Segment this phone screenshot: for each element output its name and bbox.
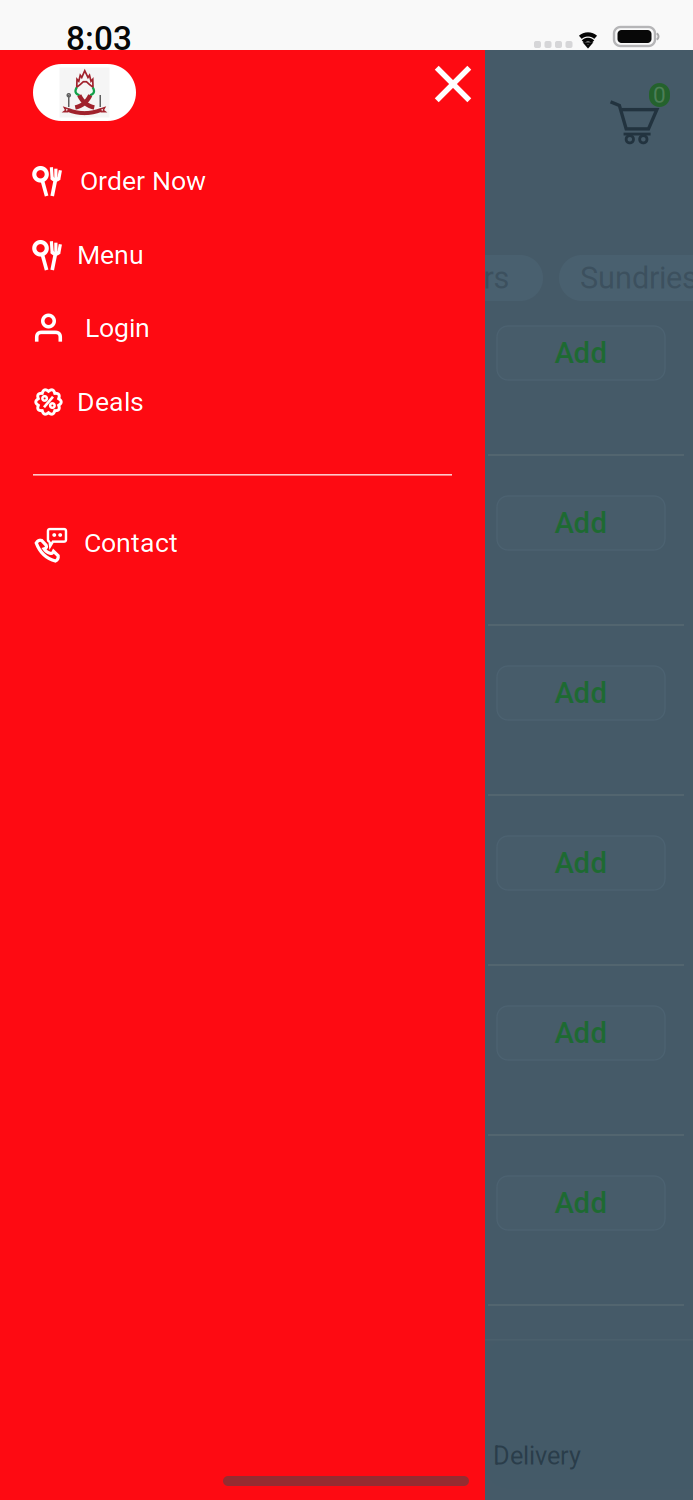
- staticText: Login: [85, 312, 150, 344]
- button[interactable]: Login: [0, 291, 485, 365]
- button[interactable]: Add: [497, 1176, 665, 1230]
- staticText: 8:03: [66, 19, 132, 58]
- button[interactable]: Add: [497, 666, 665, 720]
- staticText: Menu: [77, 239, 144, 271]
- staticText: Delivery: [493, 1441, 581, 1471]
- button[interactable]: Chilli Hut logo: [33, 64, 136, 121]
- button[interactable]: Menu: [0, 218, 485, 292]
- button[interactable]: Contact: [0, 506, 485, 580]
- staticText: Burgers: [404, 260, 509, 296]
- staticText: Add: [554, 846, 607, 880]
- staticText: Contact: [84, 527, 178, 559]
- staticText: Add: [554, 1186, 607, 1220]
- button[interactable]: Add: [497, 326, 665, 380]
- staticText: Add: [554, 676, 607, 710]
- button[interactable]: Add: [497, 836, 665, 890]
- button[interactable]: Close menu: [424, 55, 482, 113]
- button[interactable]: Order Now: [0, 144, 485, 218]
- button[interactable]: Add: [497, 496, 665, 550]
- staticText: Order Now: [80, 165, 206, 197]
- staticText: Add: [554, 1016, 607, 1050]
- button[interactable]: Add: [497, 1006, 665, 1060]
- staticText: Sundries: [580, 260, 693, 296]
- staticText: Add: [554, 336, 607, 370]
- staticText: Deals: [77, 386, 144, 418]
- staticText: Add: [554, 506, 607, 540]
- button[interactable]: Deals: [0, 365, 485, 439]
- staticText: 0: [653, 82, 666, 108]
